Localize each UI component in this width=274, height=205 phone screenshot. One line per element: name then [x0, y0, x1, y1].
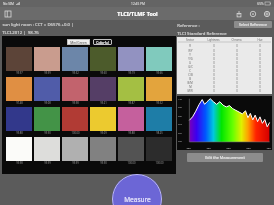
staticText: M/R — [187, 89, 193, 93]
staticText: Colorful — [96, 40, 109, 44]
staticText: 0 — [213, 53, 215, 57]
staticText: 580 — [226, 146, 231, 149]
staticText: No SIM — [3, 2, 14, 6]
staticText: 99.98 — [16, 161, 23, 165]
staticText: 380 — [186, 146, 191, 149]
staticText: 0 — [259, 53, 261, 57]
staticText: TLCI-2012 | 98.76 — [2, 29, 39, 35]
staticText: 99.52 — [72, 71, 79, 75]
button[interactable]: Settings — [262, 9, 271, 18]
staticText: 0.2 — [178, 131, 182, 134]
button[interactable]: Measure — [112, 174, 162, 205]
staticText: 99.09 — [100, 131, 107, 135]
staticText: 0 — [213, 85, 215, 89]
button[interactable]: Min/Green — [70, 40, 87, 44]
staticText: B — [189, 77, 191, 81]
staticText: 780 — [266, 146, 271, 149]
staticText: 0 — [259, 69, 261, 73]
staticText: 99.97 — [16, 71, 23, 75]
staticText: 0 — [259, 57, 261, 61]
staticText: 0 — [236, 49, 238, 53]
button[interactable]: Menu — [3, 9, 12, 18]
staticText: M — [189, 85, 192, 89]
staticText: 65% — [257, 2, 264, 6]
staticText: 99.08 — [44, 101, 51, 105]
staticText: 0 — [236, 81, 238, 85]
staticText: 99.98 — [72, 101, 79, 105]
button[interactable]: Edit the Measurement — [187, 155, 263, 160]
staticText: 99.21 — [100, 101, 107, 105]
staticText: R — [189, 44, 191, 48]
staticText: 0 — [259, 73, 261, 77]
staticText: 680 — [246, 146, 251, 149]
staticText: 0 — [236, 85, 238, 89]
staticText: 0 — [236, 53, 238, 57]
staticText: 98.25 — [156, 131, 163, 135]
staticText: G — [189, 61, 191, 65]
staticText: Lightness — [207, 38, 220, 42]
staticText: 0 — [213, 61, 215, 65]
staticText: 0 — [236, 89, 238, 93]
staticText: 0 — [259, 49, 261, 53]
staticText: 0 — [259, 65, 261, 69]
staticText: 0 — [213, 65, 215, 69]
staticText: 99.87 — [128, 101, 135, 105]
staticText: 0 — [213, 57, 215, 61]
button[interactable]: Share — [234, 9, 243, 18]
staticText: 0.8 — [178, 105, 182, 108]
staticText: 0 — [236, 44, 238, 48]
staticText: 99.88 — [128, 131, 135, 135]
staticText: 99.90 — [100, 161, 107, 165]
staticText: 1.0 — [178, 97, 182, 100]
button[interactable]: Colorful — [96, 40, 109, 44]
staticText: 99.99 — [44, 161, 51, 165]
staticText: 0 — [259, 85, 261, 89]
staticText: 0 — [236, 77, 238, 81]
staticText: 0 — [213, 81, 215, 85]
staticText: 0 — [213, 69, 215, 73]
button[interactable]: Select Reference — [239, 22, 267, 27]
staticText: 99.99 — [44, 71, 51, 75]
staticText: Reference : — [177, 22, 200, 28]
staticText: 0 — [213, 77, 215, 81]
staticText: 0 — [259, 81, 261, 85]
staticText: 0 — [236, 69, 238, 73]
staticText: 0 — [213, 44, 215, 48]
staticText: B/M — [187, 81, 193, 85]
staticText: 0 — [259, 89, 261, 93]
staticText: 0 — [213, 89, 215, 93]
staticText: 100.00 — [71, 131, 80, 135]
staticText: 97.48 — [16, 101, 23, 105]
button[interactable]: Help — [248, 9, 257, 18]
staticText: 0.6 — [178, 114, 182, 117]
staticText: sun light noon : CCT = D6576 +0.0 | — [2, 21, 74, 27]
staticText: C — [189, 69, 191, 73]
staticText: 99.19 — [128, 71, 135, 75]
staticText: 99.66 — [156, 71, 163, 75]
staticText: Y — [189, 53, 191, 57]
